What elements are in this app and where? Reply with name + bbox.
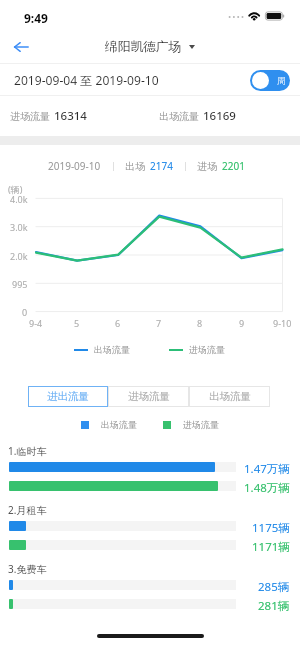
- button[interactable]: 周: [250, 70, 290, 91]
- staticText: 8: [197, 317, 203, 329]
- staticText: (辆): [8, 183, 23, 195]
- staticText: 进出流量: [47, 390, 89, 403]
- staticText: 进场流量: [128, 390, 170, 403]
- staticText: 5: [74, 317, 80, 329]
- staticText: 1175辆: [252, 520, 290, 534]
- staticText: 1.临时车: [8, 444, 47, 458]
- staticText: 出场流量: [94, 344, 130, 355]
- button[interactable]: 绵阳凯德广场: [105, 39, 195, 55]
- staticText: 2174: [150, 159, 173, 173]
- staticText: 2201: [222, 159, 245, 173]
- staticText: 出场流量: [101, 419, 137, 430]
- staticText: 16169: [203, 108, 236, 124]
- button[interactable]: 出场流量: [189, 386, 270, 407]
- staticText: 2.0k: [10, 250, 28, 262]
- staticText: 6: [115, 317, 121, 329]
- button[interactable]: Back: [6, 32, 36, 62]
- staticText: 出场流量: [209, 390, 251, 403]
- staticText: 285辆: [258, 579, 290, 593]
- staticText: 进场流量: [10, 110, 50, 123]
- staticText: 2.月租车: [8, 503, 47, 517]
- button[interactable]: 2019-09-04 至 2019-09-10: [14, 72, 159, 89]
- staticText: 绵阳凯德广场: [105, 39, 182, 55]
- staticText: 9-10: [273, 317, 292, 329]
- staticText: 进场流量: [189, 344, 225, 355]
- staticText: 9:49: [24, 10, 48, 26]
- staticText: 9: [239, 317, 245, 329]
- button[interactable]: 进场流量: [108, 386, 189, 407]
- staticText: 2019-09-10: [48, 159, 101, 173]
- button[interactable]: 进出流量: [28, 386, 108, 407]
- staticText: 1.47万辆: [244, 461, 290, 475]
- staticText: 3.0k: [10, 221, 28, 233]
- staticText: 4.0k: [10, 193, 28, 205]
- staticText: 16314: [54, 108, 87, 124]
- staticText: 3.免费车: [8, 562, 47, 576]
- staticText: 进场流量: [183, 419, 219, 430]
- staticText: 7: [156, 317, 162, 329]
- staticText: 1.48万辆: [244, 480, 290, 494]
- staticText: 0: [22, 306, 28, 318]
- staticText: 281辆: [258, 598, 290, 612]
- staticText: 出场: [125, 160, 145, 173]
- staticText: 出场流量: [159, 110, 199, 123]
- staticText: 1171辆: [252, 539, 290, 553]
- staticText: 9-4: [29, 317, 43, 329]
- staticText: 995: [12, 278, 28, 290]
- staticText: 进场: [197, 160, 217, 173]
- staticText: 周: [277, 75, 286, 86]
